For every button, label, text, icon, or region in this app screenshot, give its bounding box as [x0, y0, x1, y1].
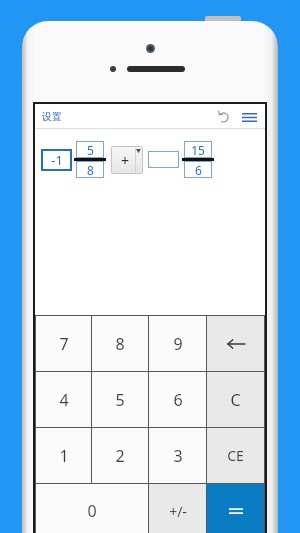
button[interactable]: 0 [36, 484, 148, 533]
staticText: 8 [115, 333, 125, 355]
button[interactable] [148, 151, 179, 168]
button[interactable]: +/- [149, 484, 206, 533]
staticText: 6 [173, 389, 183, 411]
staticText: 4 [59, 389, 69, 411]
button[interactable]: 6 [184, 161, 212, 178]
button[interactable] [207, 484, 264, 533]
button[interactable]: Undo [214, 108, 234, 126]
staticText: C [230, 389, 241, 411]
staticText: 1 [59, 445, 69, 467]
button[interactable]: 9 [149, 316, 206, 371]
button[interactable]: Backspace [207, 316, 264, 371]
staticText: 15 [191, 142, 205, 158]
button[interactable]: 3 [149, 428, 206, 483]
button[interactable]: 6 [149, 372, 206, 427]
staticText: -1 [51, 151, 63, 169]
staticText: 7 [59, 333, 69, 355]
staticText: CE [227, 446, 244, 465]
staticText: +/- [169, 502, 187, 521]
staticText: 5 [115, 389, 125, 411]
staticText: 9 [173, 333, 183, 355]
button[interactable]: 设置 [35, 107, 69, 126]
button[interactable]: 2 [92, 428, 148, 483]
button[interactable]: Operator plus [111, 146, 143, 174]
button[interactable]: -1 [41, 149, 72, 171]
button[interactable]: 4 [36, 372, 91, 427]
button[interactable]: 15 [184, 141, 212, 158]
button[interactable]: 8 [92, 316, 148, 371]
staticText: 3 [173, 445, 183, 467]
staticText: 0 [87, 500, 97, 522]
staticText: 8 [87, 162, 94, 178]
button[interactable]: 5 [76, 141, 104, 158]
button[interactable]: CE [207, 428, 264, 483]
button[interactable]: 5 [92, 372, 148, 427]
button[interactable]: 8 [76, 161, 104, 178]
button[interactable]: 1 [36, 428, 91, 483]
button[interactable]: C [207, 372, 264, 427]
button[interactable]: Menu [238, 108, 260, 126]
button[interactable]: 7 [36, 316, 91, 371]
staticText: 设置 [42, 110, 62, 123]
staticText: + [121, 151, 130, 170]
staticText: 5 [87, 142, 94, 158]
staticText: 2 [115, 445, 125, 467]
staticText: 6 [195, 162, 202, 178]
